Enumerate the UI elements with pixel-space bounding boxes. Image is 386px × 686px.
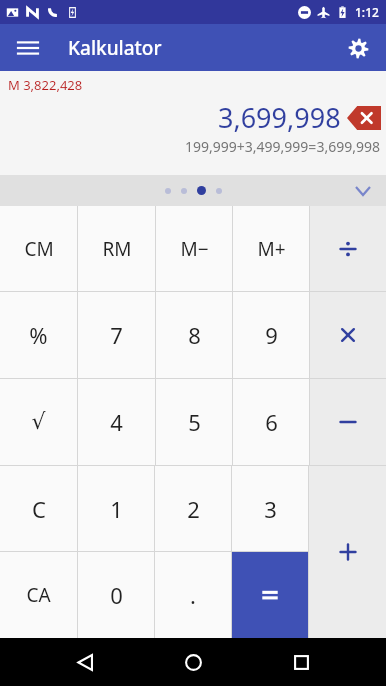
button[interactable]: . <box>155 552 231 638</box>
button[interactable]: Add <box>309 466 386 638</box>
staticText: C <box>32 494 46 524</box>
button[interactable]: 2 <box>155 466 231 551</box>
staticText: 3 <box>264 494 277 524</box>
button[interactable]: Recents <box>278 639 324 685</box>
button[interactable]: CA <box>0 552 77 638</box>
button[interactable]: 0 <box>78 552 154 638</box>
button[interactable]: CM <box>0 206 77 291</box>
button[interactable]: 5 <box>156 379 232 465</box>
button[interactable]: Backspace <box>347 106 381 130</box>
button[interactable]: √ <box>0 379 77 465</box>
button[interactable]: % <box>0 292 77 378</box>
button[interactable]: M− <box>156 206 232 291</box>
staticText: 1:12 <box>355 4 379 20</box>
button[interactable]: Equals <box>232 552 308 638</box>
button[interactable]: Settings <box>338 28 378 68</box>
staticText: 7 <box>110 320 123 350</box>
staticText: M 3,822,428 <box>8 76 83 94</box>
staticText: 9 <box>265 320 278 350</box>
staticText: 2 <box>187 494 200 524</box>
button[interactable]: Home <box>170 639 216 685</box>
button[interactable]: 3 <box>232 466 308 551</box>
button[interactable]: 4 <box>78 379 155 465</box>
button[interactable]: M+ <box>233 206 309 291</box>
button[interactable]: 6 <box>233 379 309 465</box>
staticText: RM <box>102 236 132 262</box>
button[interactable]: 9 <box>233 292 309 378</box>
staticText: 4 <box>110 407 123 437</box>
staticText: Kalkulator <box>68 35 162 61</box>
staticText: CA <box>26 582 51 608</box>
button[interactable]: 1 <box>78 466 154 551</box>
button[interactable]: Expand <box>348 176 378 206</box>
button[interactable]: 8 <box>156 292 232 378</box>
staticText: CM <box>24 236 54 262</box>
staticText: M− <box>180 236 209 262</box>
button[interactable]: Subtract <box>310 379 386 465</box>
button[interactable]: RM <box>78 206 155 291</box>
staticText: 5 <box>188 407 201 437</box>
button[interactable]: 7 <box>78 292 155 378</box>
staticText: √ <box>31 409 46 435</box>
button[interactable]: Divide <box>310 206 386 291</box>
button[interactable]: Multiply <box>310 292 386 378</box>
staticText: 0 <box>110 580 123 610</box>
staticText: 6 <box>265 407 278 437</box>
staticText: 199,999+3,499,999=3,699,998 <box>185 137 380 156</box>
staticText: 1 <box>110 494 123 524</box>
button[interactable]: Menu <box>8 28 48 68</box>
staticText: % <box>29 320 48 350</box>
staticText: . <box>190 580 196 610</box>
staticText: 8 <box>188 320 201 350</box>
staticText: 3,699,998 <box>218 99 341 136</box>
staticText: M+ <box>257 236 286 262</box>
button[interactable]: Back <box>62 639 108 685</box>
button[interactable]: C <box>0 466 77 551</box>
